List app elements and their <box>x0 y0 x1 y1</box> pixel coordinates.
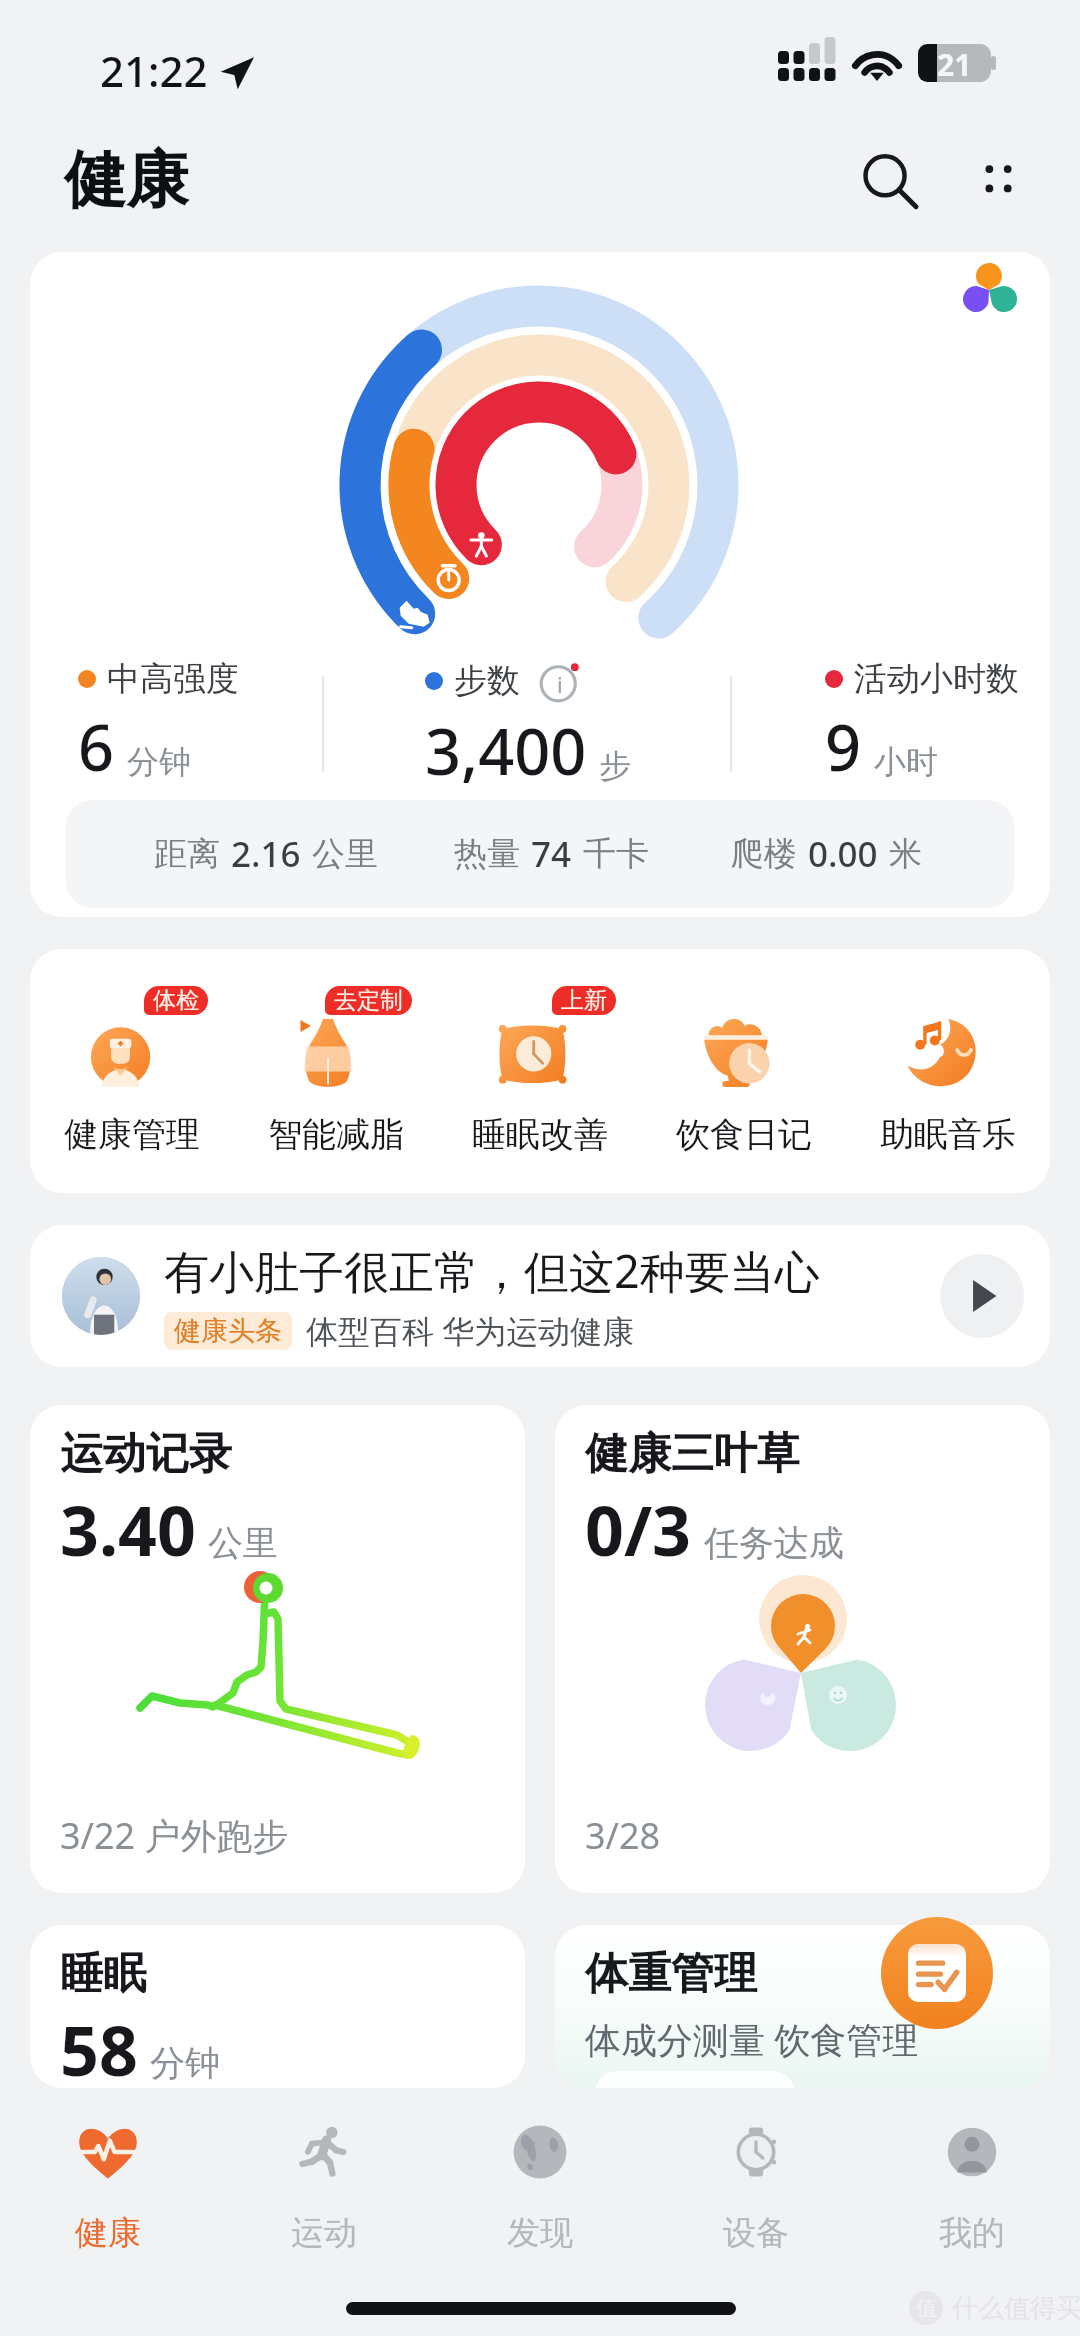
staticText: 健康管理 <box>64 1113 200 1156</box>
button[interactable] <box>30 252 1050 917</box>
button[interactable]: 助眠音乐 <box>846 949 1050 1193</box>
staticText: 2.16 <box>231 830 301 878</box>
staticText: 发现 <box>507 2212 573 2254</box>
button[interactable]: 我的 <box>864 2096 1080 2286</box>
staticText: 21 <box>937 44 972 82</box>
staticText: 千卡 <box>583 833 649 875</box>
staticText: 运动 <box>291 2212 357 2254</box>
staticText: 睡眠 <box>60 1947 146 2001</box>
staticText: 值 <box>916 2295 937 2321</box>
staticText: 体成分测量 饮食管理 <box>585 2015 919 2064</box>
staticText: 步数 <box>454 660 520 702</box>
button[interactable]: Search <box>842 134 938 230</box>
staticText: 分钟 <box>150 2041 220 2085</box>
staticText: 睡眠改善 <box>472 1113 608 1156</box>
button[interactable]: 发现 <box>432 2096 648 2286</box>
staticText: 3.40 <box>60 1483 196 1576</box>
staticText: 3/22 户外跑步 <box>60 1811 289 1860</box>
staticText: 健康 <box>64 141 188 219</box>
staticText: 热量 <box>454 833 520 875</box>
button[interactable]: 运动 <box>216 2096 432 2286</box>
staticText: 体检 <box>153 986 199 1015</box>
staticText: 有小肚子很正常，但这2种要当心 <box>164 1240 820 1301</box>
button[interactable]: 上新 <box>438 949 642 1193</box>
staticText: 分钟 <box>127 742 191 782</box>
staticText: 步 <box>599 746 631 786</box>
staticText: 21:22 <box>100 42 208 99</box>
button[interactable]: Health services <box>928 252 1050 325</box>
staticText: 饮食日记 <box>676 1113 812 1156</box>
staticText: 6 <box>78 704 115 790</box>
button[interactable]: 健康 <box>0 2096 216 2286</box>
staticText: 健康三叶草 <box>585 1427 800 1481</box>
staticText: 小时 <box>874 742 938 782</box>
staticText: 体重管理 <box>585 1947 757 2001</box>
button[interactable]: Play <box>940 1254 1024 1338</box>
staticText: 体型百科 华为运动健康 <box>306 1309 635 1353</box>
button[interactable]: More options <box>950 134 1046 230</box>
staticText: 米 <box>889 833 922 875</box>
staticText: 健康 <box>75 2212 141 2254</box>
button[interactable]: 体检 <box>30 949 234 1193</box>
button[interactable]: 设备 <box>648 2096 864 2286</box>
staticText: 0.00 <box>808 830 878 878</box>
button[interactable]: 去定制 <box>234 949 438 1193</box>
button[interactable]: 饮食日记 <box>642 949 846 1193</box>
staticText: 智能减脂 <box>268 1113 404 1156</box>
staticText: 3,400 <box>425 708 587 794</box>
staticText: 助眠音乐 <box>880 1113 1016 1156</box>
staticText: 健康头条 <box>174 1314 282 1348</box>
staticText: 上新 <box>561 986 607 1015</box>
staticText: 公里 <box>208 1521 278 1565</box>
staticText: 设备 <box>723 2212 789 2254</box>
staticText: 3/28 <box>585 1811 661 1860</box>
button[interactable]: 健康三叶草 <box>555 1405 1050 1893</box>
staticText: 9 <box>825 704 862 790</box>
button[interactable]: 体重管理 <box>555 1925 1050 2088</box>
staticText: 距离 <box>154 833 220 875</box>
staticText: 我的 <box>939 2212 1005 2254</box>
staticText: 爬楼 <box>731 833 797 875</box>
staticText: 74 <box>531 830 572 878</box>
staticText: 公里 <box>312 833 378 875</box>
staticText: 58 <box>60 2003 138 2088</box>
staticText: 活动小时数 <box>854 658 1019 700</box>
button[interactable]: Add record <box>881 1917 993 2029</box>
staticText: 任务达成 <box>704 1521 844 1565</box>
staticText: 0/3 <box>585 1483 692 1576</box>
staticText: 中高强度 <box>107 658 239 700</box>
button[interactable]: 运动记录 <box>30 1405 525 1893</box>
staticText: 去定制 <box>334 986 403 1015</box>
staticText: i <box>557 669 563 699</box>
staticText: 运动记录 <box>60 1427 232 1481</box>
staticText: 什么值得买 <box>952 2292 1080 2325</box>
button[interactable]: 睡眠 <box>30 1925 525 2088</box>
button[interactable]: 有小肚子很正常，但这2种要当心 <box>30 1225 1050 1367</box>
